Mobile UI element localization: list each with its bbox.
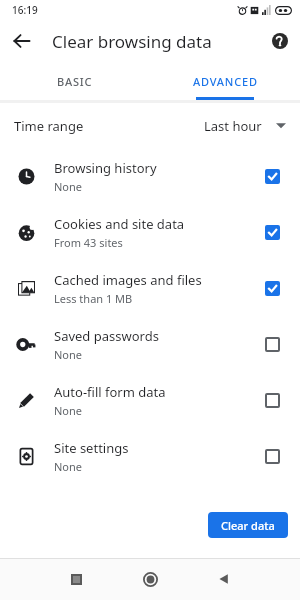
staticText: Cached images and files xyxy=(54,271,202,289)
staticText: None xyxy=(54,459,83,474)
button[interactable] xyxy=(258,274,286,302)
staticText: None xyxy=(54,403,83,418)
staticText: Clear data xyxy=(221,518,275,533)
button[interactable] xyxy=(258,330,286,358)
staticText: 16:19 xyxy=(12,3,38,17)
button[interactable]: Site settings xyxy=(0,428,300,484)
button[interactable]: BASIC xyxy=(0,62,150,100)
staticText: Time range xyxy=(14,117,84,135)
staticText: Cookies and site data xyxy=(54,215,185,233)
button[interactable] xyxy=(258,386,286,414)
staticText: BASIC xyxy=(57,74,93,89)
button[interactable]: Help xyxy=(265,26,295,56)
button[interactable]: Cookies and site data xyxy=(0,204,300,260)
button[interactable]: Recent apps xyxy=(59,562,93,596)
staticText: Clear browsing data xyxy=(52,30,212,53)
staticText: Less than 1 MB xyxy=(54,291,133,306)
staticText: Saved passwords xyxy=(54,327,159,345)
button[interactable]: Home xyxy=(133,562,167,596)
staticText: From 43 sites xyxy=(54,235,123,250)
button[interactable]: Navigate up xyxy=(6,25,38,57)
staticText: Last hour xyxy=(204,117,262,135)
button[interactable]: Clear data xyxy=(208,512,288,538)
button[interactable] xyxy=(258,218,286,246)
staticText: Site settings xyxy=(54,439,129,457)
button[interactable] xyxy=(258,162,286,190)
button[interactable]: ADVANCED xyxy=(150,62,300,100)
staticText: None xyxy=(54,179,83,194)
button[interactable] xyxy=(258,442,286,470)
staticText: None xyxy=(54,347,83,362)
button[interactable]: Back xyxy=(207,562,241,596)
button[interactable]: Auto-fill form data xyxy=(0,372,300,428)
button[interactable]: Time range xyxy=(0,103,300,148)
button[interactable]: Browsing history xyxy=(0,148,300,204)
button[interactable]: Cached images and files xyxy=(0,260,300,316)
staticText: Browsing history xyxy=(54,159,157,177)
staticText: Auto-fill form data xyxy=(54,383,166,401)
staticText: ADVANCED xyxy=(193,74,258,89)
button[interactable]: Saved passwords xyxy=(0,316,300,372)
